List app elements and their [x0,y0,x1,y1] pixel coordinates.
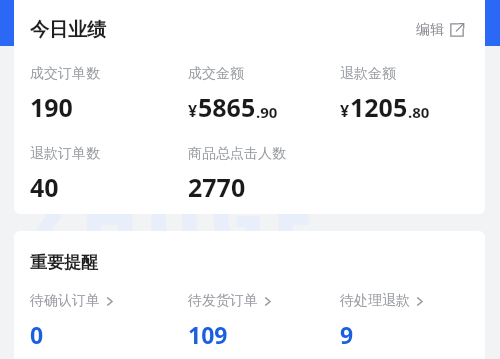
staticText: 退款金额 [340,65,396,83]
staticText: 5865 [198,90,256,124]
staticText: 1205 [350,90,408,124]
staticText: 商品总点击人数 [188,145,286,163]
staticText: .90 [256,102,278,122]
staticText: 9 [340,319,354,350]
button[interactable]: 待确认订单 [30,292,160,350]
staticText: 待处理退款 [340,292,410,310]
staticText: .80 [408,102,430,122]
staticText: 40 [30,170,59,204]
staticText: ZHUGE [28,168,322,269]
button[interactable]: 待处理退款 [340,292,470,350]
staticText: 待确认订单 [30,292,100,310]
staticText: 重要提醒 [30,252,98,273]
staticText: 退款订单数 [30,145,100,163]
staticText: 0 [30,319,44,350]
staticText: 今日业绩 [30,18,106,42]
button[interactable]: 待发货订单 [188,292,318,350]
staticText: 编辑 [416,21,444,39]
staticText: 成交金额 [188,65,244,83]
staticText: 成交订单数 [30,65,100,83]
staticText: 190 [30,90,73,124]
button[interactable]: 编辑 [414,14,466,46]
staticText: ¥ [340,100,350,122]
staticText: 2770 [188,170,246,204]
staticText: 109 [188,319,228,350]
staticText: ¥ [188,100,198,122]
other: 编辑 [450,23,464,37]
staticText: 待发货订单 [188,292,258,310]
